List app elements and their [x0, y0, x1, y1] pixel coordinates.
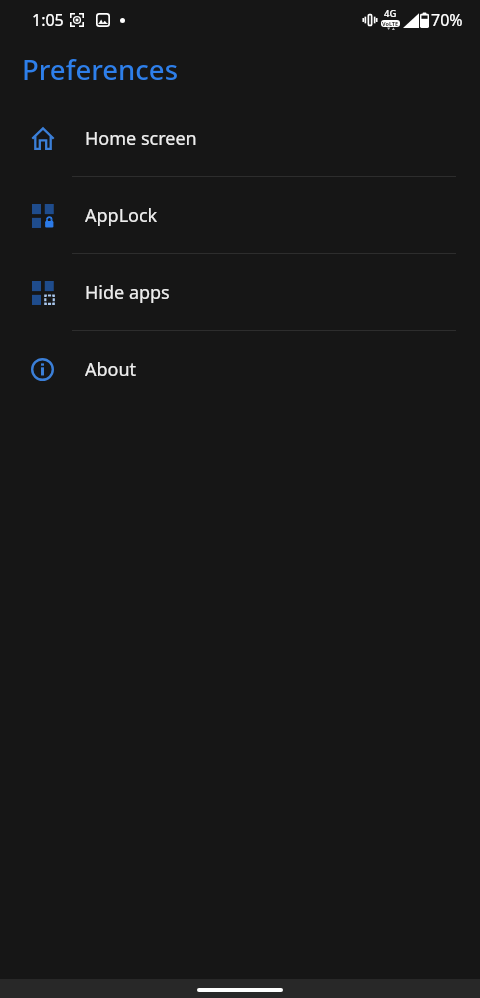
button[interactable]: Hide apps	[0, 254, 480, 331]
staticText: Home screen	[85, 126, 197, 151]
staticText: Hide apps	[85, 280, 170, 305]
staticText: 70%	[431, 9, 463, 31]
button[interactable]: AppLock	[0, 177, 480, 254]
staticText: VoLTE	[382, 20, 399, 27]
button[interactable]: About	[0, 331, 480, 408]
staticText: 4G	[384, 7, 397, 20]
staticText: About	[85, 357, 137, 382]
staticText: Preferences	[22, 51, 179, 88]
staticText: 1:05	[32, 9, 64, 31]
button[interactable]: Home screen	[0, 100, 480, 177]
staticText: AppLock	[85, 203, 158, 228]
